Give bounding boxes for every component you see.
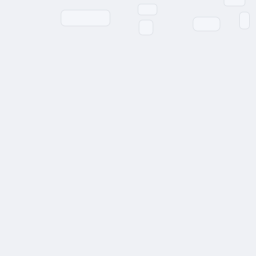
button[interactable]: Battery bbox=[239, 12, 249, 29]
button[interactable]: Profile bbox=[139, 20, 153, 35]
button[interactable]: Notifications bbox=[138, 4, 157, 15]
button[interactable]: Filter bbox=[193, 17, 220, 31]
button[interactable]: More bbox=[224, 0, 245, 6]
button[interactable]: Title bbox=[61, 10, 110, 26]
